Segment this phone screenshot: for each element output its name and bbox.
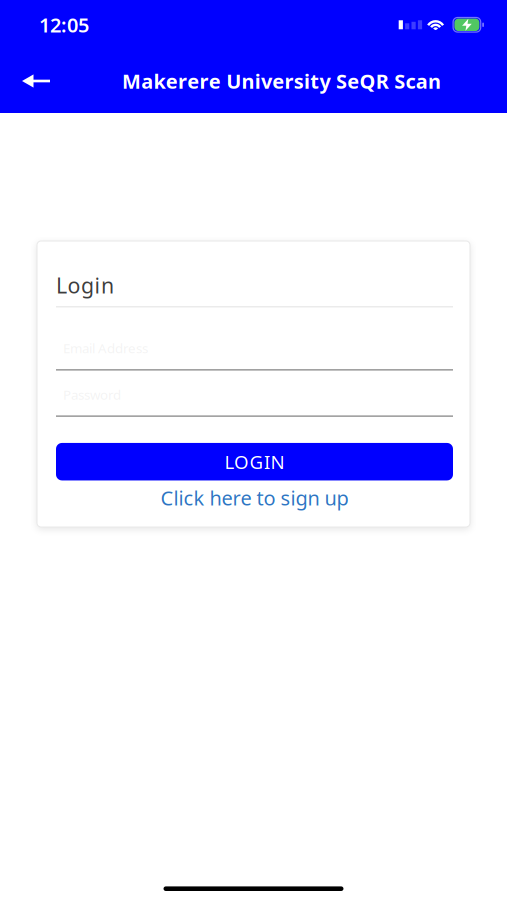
button[interactable]: Back xyxy=(0,73,56,89)
staticText: Email Address xyxy=(63,339,148,357)
staticText: 12:05 xyxy=(39,11,89,38)
staticText: Login xyxy=(56,271,114,299)
button[interactable]: LOGIN xyxy=(56,443,453,480)
staticText: Click here to sign up xyxy=(160,484,348,511)
staticText: LOGIN xyxy=(224,449,284,474)
staticText: Makerere University SeQR Scan xyxy=(122,68,441,94)
staticText: Password xyxy=(63,386,121,403)
button[interactable]: Click here to sign up xyxy=(56,484,453,511)
